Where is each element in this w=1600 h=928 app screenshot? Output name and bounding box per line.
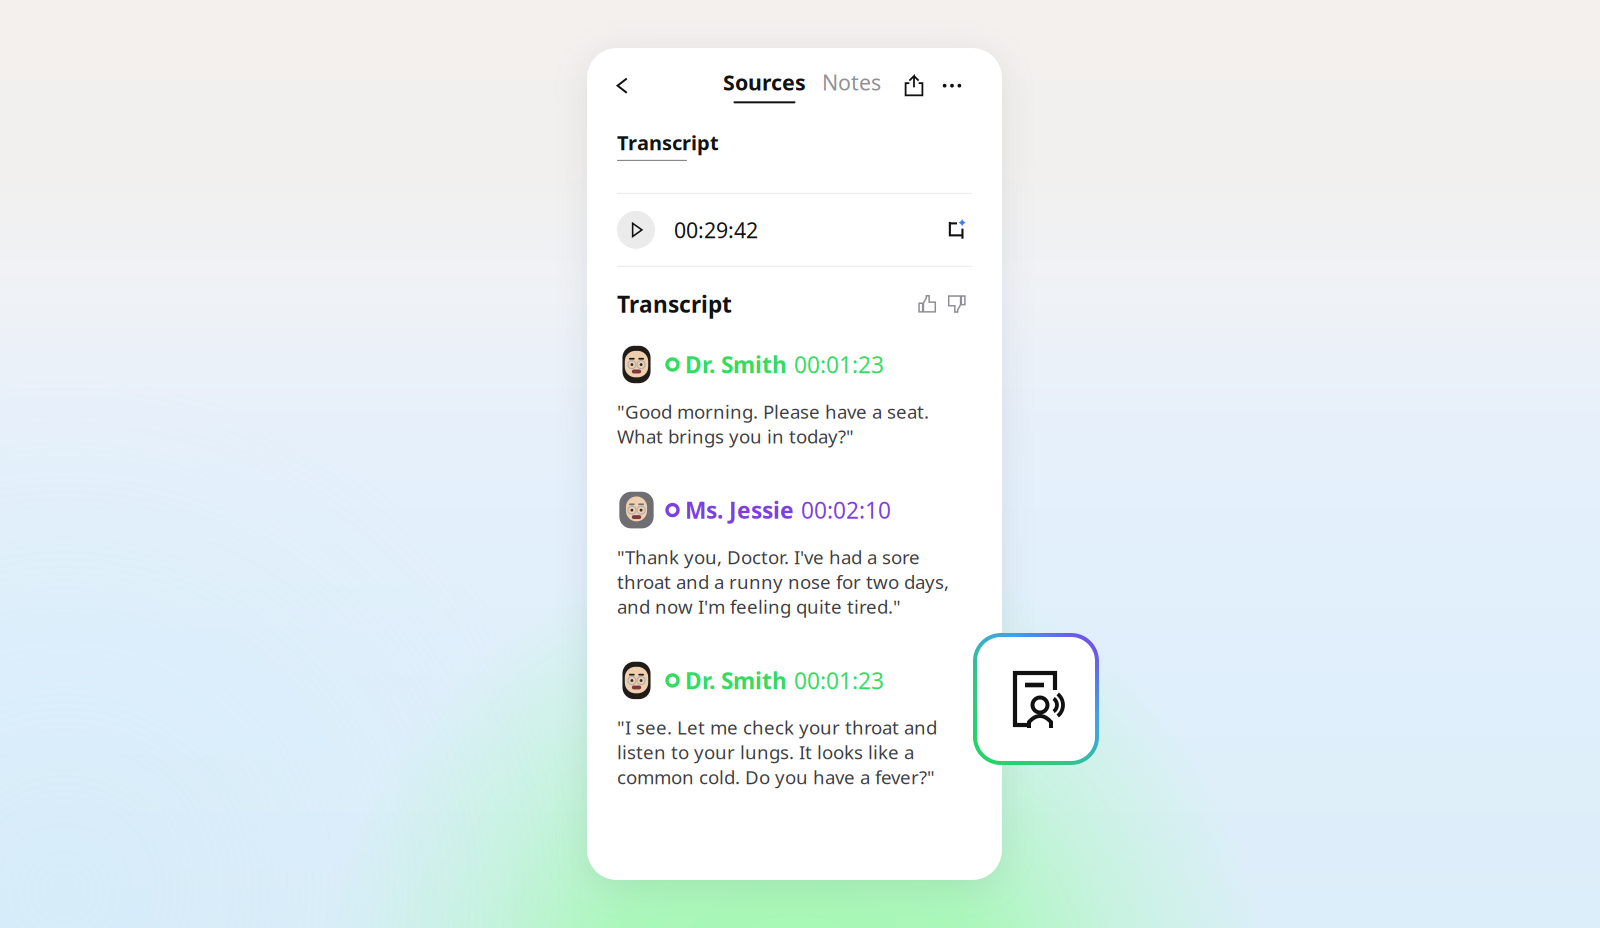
button[interactable]: Open transcription app — [973, 633, 1099, 765]
button[interactable]: More options — [928, 71, 966, 101]
button[interactable]: Play — [617, 211, 655, 249]
button[interactable]: Back — [605, 69, 639, 103]
button[interactable]: Notes — [806, 68, 885, 103]
staticText: Sources — [723, 68, 806, 96]
staticText: "Thank you, Doctor. I've had a sore thro… — [617, 545, 949, 619]
staticText: Ms. Jessie — [685, 495, 794, 525]
button[interactable]: Transcript — [617, 129, 719, 161]
button[interactable]: Share — [900, 71, 928, 101]
staticText: 00:02:10 — [801, 495, 891, 525]
staticText: 00:01:23 — [794, 349, 884, 379]
button[interactable]: Generate summary — [942, 215, 972, 245]
button[interactable]: Bad response — [942, 291, 972, 317]
button[interactable]: Good response — [912, 291, 942, 317]
staticText: Dr. Smith — [685, 665, 787, 695]
staticText: 00:01:23 — [794, 665, 884, 695]
staticText: Dr. Smith — [685, 349, 787, 379]
staticText: Transcript — [617, 289, 732, 319]
staticText: Transcript — [617, 129, 719, 156]
staticText: 00:29:42 — [674, 216, 758, 244]
staticText: "I see. Let me check your throat and lis… — [617, 715, 937, 789]
staticText: "Good morning. Please have a seat. What … — [617, 399, 929, 449]
staticText: Notes — [822, 68, 881, 96]
button[interactable]: Sources — [723, 68, 806, 103]
